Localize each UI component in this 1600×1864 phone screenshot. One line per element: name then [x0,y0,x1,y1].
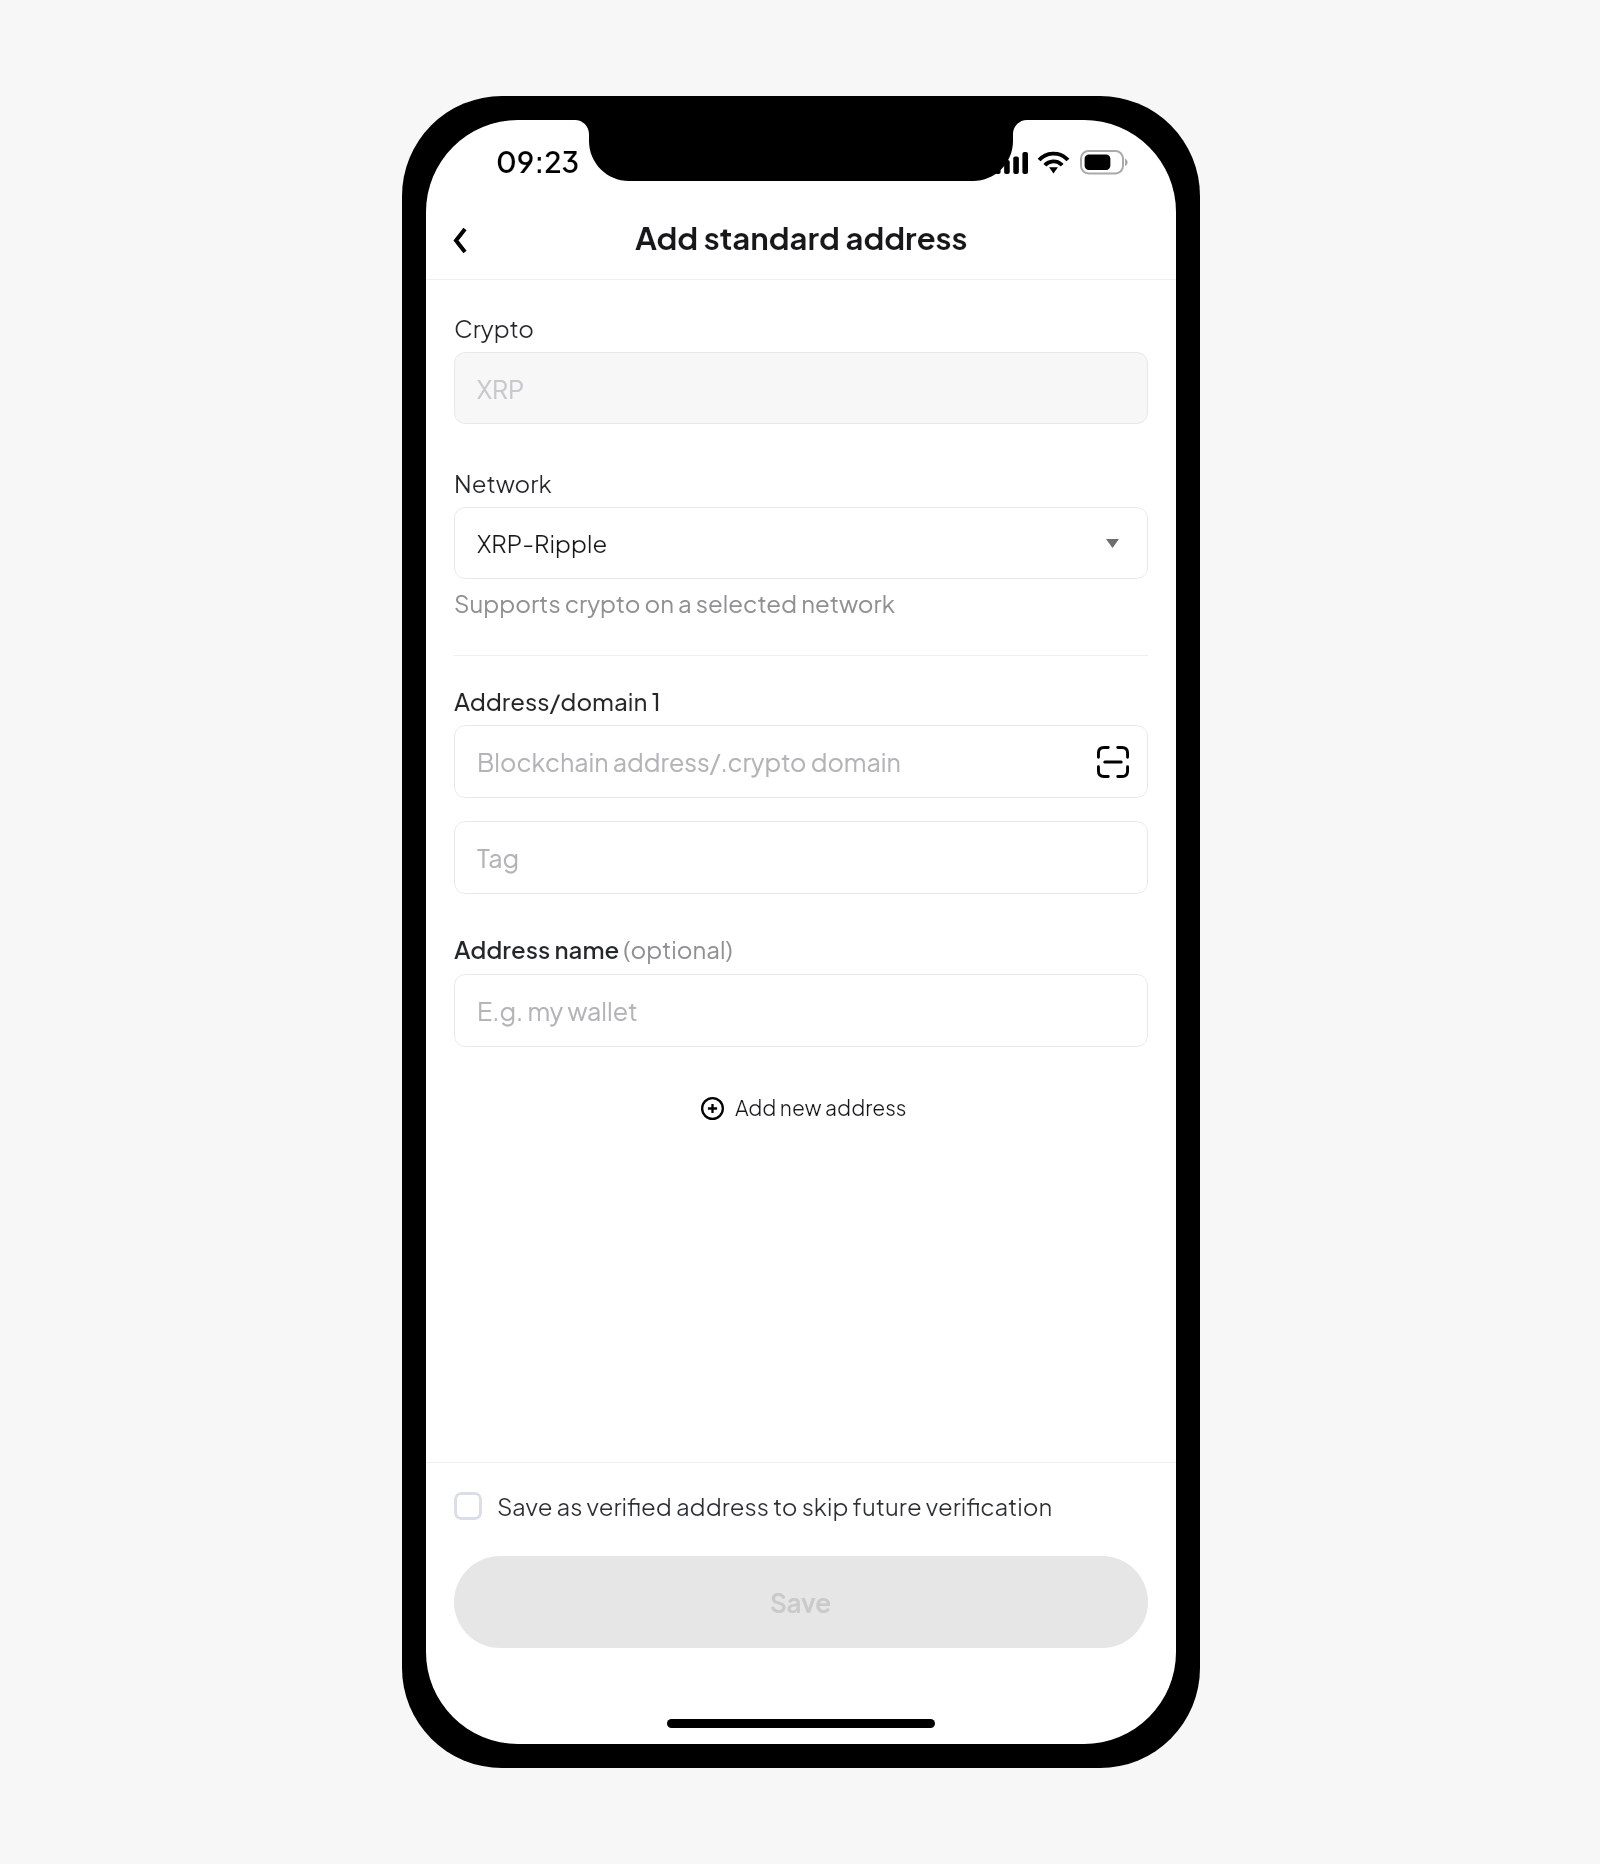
staticText: Network [454,468,552,498]
button[interactable]: Tag [454,821,1148,894]
staticText: Add new address [735,1094,907,1120]
button[interactable]: Add new address [454,1094,1148,1120]
button[interactable]: XRP-Ripple [454,507,1148,579]
button[interactable]: Save as verified address [454,1492,482,1520]
staticText: Address/domain 1 [454,686,661,716]
staticText: Address name (optional) [454,934,733,964]
staticText: Supports crypto on a selected network [454,588,895,618]
staticText: E.g. my wallet [477,995,638,1026]
button[interactable]: Back [432,212,488,268]
staticText: XRP-Ripple [477,528,608,558]
button[interactable]: Save [454,1556,1148,1648]
staticText: Tag [477,842,520,873]
staticText: Crypto [454,313,535,343]
button[interactable]: E.g. my wallet [454,974,1148,1047]
staticText: XRP [477,373,525,404]
staticText: Save as verified address to skip future … [497,1491,1053,1521]
button[interactable]: Scan QR code [1091,740,1135,784]
staticText: 09:23 [496,143,580,180]
staticText: Add standard address [635,218,968,257]
staticText: Save [770,1586,832,1619]
button[interactable]: XRP [454,352,1148,424]
button[interactable]: Blockchain address/.crypto domain [454,725,1148,798]
staticText: Blockchain address/.crypto domain [477,746,901,777]
